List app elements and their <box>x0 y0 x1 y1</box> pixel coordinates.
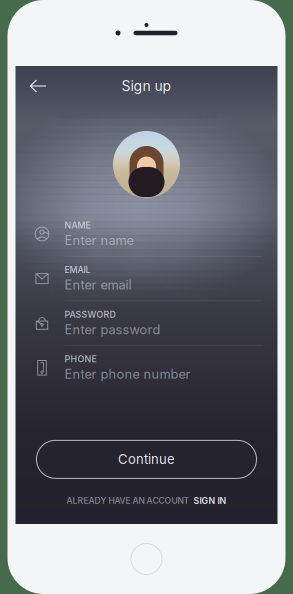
staticText: PASSWORD <box>64 309 115 320</box>
staticText: Enter name <box>64 233 133 248</box>
staticText: Continue <box>118 451 175 467</box>
staticText: EMAIL <box>64 264 90 275</box>
button[interactable]: Back <box>21 71 55 101</box>
staticText: Enter password <box>64 322 160 337</box>
button[interactable]: Continue <box>36 440 256 478</box>
button[interactable]: ALREADY HAVE AN ACCOUNT <box>66 495 226 506</box>
staticText: PHONE <box>64 354 96 364</box>
staticText: NAME <box>64 220 90 230</box>
staticText: Sign up <box>121 77 171 94</box>
staticText: Enter email <box>64 277 131 293</box>
staticText: SIGN IN <box>193 495 226 506</box>
staticText: Enter phone number <box>64 366 190 382</box>
staticText: ALREADY HAVE AN ACCOUNT <box>66 495 189 506</box>
